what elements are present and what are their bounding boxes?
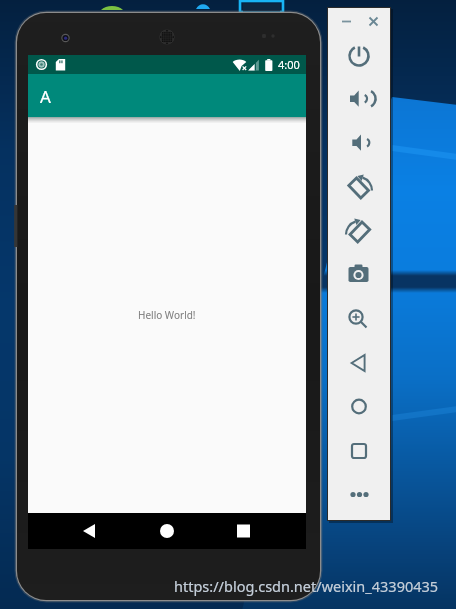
button[interactable]: Home [340,389,378,427]
staticText: 4:00 [278,57,300,72]
button[interactable]: Zoom [340,299,378,337]
button[interactable]: Home [138,513,196,549]
button[interactable]: Minimize [336,12,356,31]
button[interactable]: Back [58,513,116,549]
button[interactable]: Volume down [340,125,378,163]
staticText: Hello World! [138,308,196,322]
button[interactable]: Close [364,12,384,31]
button[interactable]: App bar [28,74,306,116]
button[interactable]: Volume up [340,81,378,119]
button[interactable]: Back [340,345,378,383]
button[interactable]: Take screenshot [340,257,378,295]
staticText: https://blog.csdn.net/weixin_43390435 [174,576,439,596]
button[interactable]: Recent apps [214,513,272,549]
button[interactable]: Rotate left [340,169,378,207]
button[interactable]: More [340,477,378,515]
button[interactable]: Overview [340,433,378,471]
button[interactable]: Rotate right [340,213,378,251]
staticText: A [40,85,51,108]
button[interactable]: Power [340,37,378,75]
